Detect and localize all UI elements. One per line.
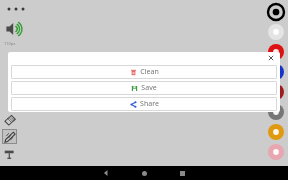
button[interactable]: Colour xyxy=(266,142,286,162)
staticText: 110px xyxy=(4,41,16,46)
button[interactable]: Recent apps xyxy=(172,166,192,180)
button[interactable]: Colour xyxy=(266,122,286,142)
button[interactable]: Roller xyxy=(2,146,17,161)
button[interactable]: Colour xyxy=(266,2,286,22)
button[interactable]: Pencil xyxy=(2,129,17,144)
button[interactable]: Clean xyxy=(11,65,277,79)
staticText: Save xyxy=(141,83,157,93)
button[interactable]: Sound xyxy=(4,19,24,39)
button[interactable]: Save xyxy=(11,81,277,95)
button[interactable]: Back xyxy=(96,166,116,180)
button[interactable]: Colour xyxy=(266,102,286,122)
button[interactable]: Share xyxy=(11,97,277,111)
staticText: Share xyxy=(140,99,159,109)
button[interactable]: Colour xyxy=(266,22,286,42)
button[interactable]: Close xyxy=(266,53,276,63)
button[interactable]: Eraser xyxy=(2,112,17,127)
button[interactable]: Colour xyxy=(266,62,286,82)
button[interactable]: Home xyxy=(134,166,154,180)
button[interactable]: Colour xyxy=(266,42,286,62)
staticText: Clean xyxy=(140,67,159,77)
button[interactable]: More options xyxy=(4,3,28,15)
button[interactable]: Colour xyxy=(266,82,286,102)
